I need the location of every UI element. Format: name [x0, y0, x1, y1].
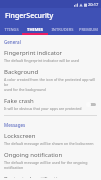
button[interactable]: TTINGS	[0, 23, 22, 35]
staticText: Fingerprint indicator	[4, 49, 63, 57]
staticText: The default fingerprint indicator will b…	[4, 58, 80, 63]
button[interactable]: Fake crash toggle	[86, 101, 97, 107]
staticText: Fake crash	[4, 97, 34, 105]
staticText: PREMIUM	[79, 27, 98, 32]
staticText: FingerSecurity	[5, 11, 54, 21]
staticText: THEMES	[27, 27, 43, 32]
staticText: Messages	[4, 122, 26, 128]
button[interactable]: THEMES	[22, 23, 48, 35]
staticText: INTRUDERS	[51, 27, 74, 32]
staticText: TTINGS	[4, 27, 19, 32]
button[interactable]: Protected notifications	[0, 172, 101, 180]
button[interactable]: Ongoing notification	[0, 148, 101, 172]
button[interactable]: Fake crash	[0, 94, 101, 113]
staticText: Protected notifications	[4, 175, 68, 178]
button[interactable]: Background	[0, 65, 101, 94]
staticText: General	[4, 39, 21, 45]
staticText: It will be obvious that your apps are pr…	[4, 106, 82, 111]
staticText: 20:17	[88, 2, 99, 7]
button[interactable]: Lockscreen	[0, 129, 101, 148]
button[interactable]: PREMIUM	[76, 23, 101, 35]
staticText: The default message will be used for the…	[4, 160, 88, 170]
staticText: Background	[4, 68, 39, 76]
staticText: Ongoing notification	[4, 151, 63, 159]
button[interactable]: INTRUDERS	[48, 23, 76, 35]
staticText: Lockscreen	[4, 132, 36, 140]
button[interactable]: Fingerprint indicator	[0, 46, 101, 65]
staticText: The default message will be shown on the…	[4, 141, 94, 146]
staticText: A color created from the icon of the pro…	[4, 77, 95, 92]
